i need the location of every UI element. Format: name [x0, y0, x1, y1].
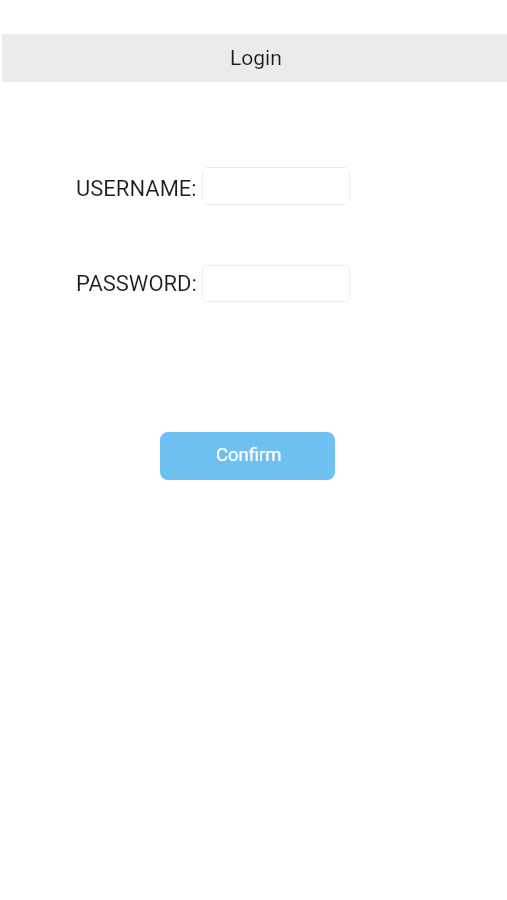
button[interactable]: Username input field — [202, 167, 350, 205]
button[interactable]: Password input field — [202, 265, 350, 302]
staticText: Confirm — [216, 444, 282, 466]
staticText: USERNAME: — [76, 176, 197, 202]
staticText: PASSWORD: — [76, 271, 197, 297]
staticText: Login — [230, 46, 282, 71]
button[interactable]: Confirm — [160, 432, 335, 480]
